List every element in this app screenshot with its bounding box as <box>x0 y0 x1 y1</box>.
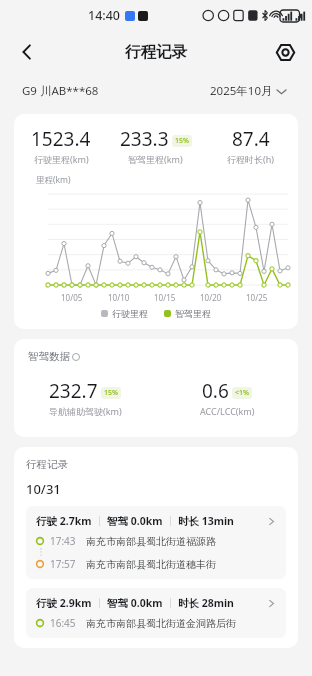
staticText: 行驶 2.7km <box>36 514 92 528</box>
staticText: 南充市南部县蜀北街道福源路 <box>86 535 216 548</box>
button[interactable]: 行驶 2.7km <box>26 506 286 579</box>
staticText: 2025年10月 <box>210 83 273 99</box>
staticText: 南充市南部县蜀北街道穗丰街 <box>86 558 216 571</box>
staticText: 智驾数据 <box>28 350 70 363</box>
staticText: 行程记录 <box>26 458 68 471</box>
staticText: 行程时长(h) <box>227 153 274 165</box>
staticText: 时长 28min <box>178 596 234 610</box>
staticText: 行驶 2.9km <box>36 596 92 610</box>
staticText: 10/31 <box>26 480 61 498</box>
staticText: 时长 13min <box>178 514 234 528</box>
staticText: 10/05 <box>61 292 83 303</box>
staticText: ACC/LCC(km) <box>200 405 255 417</box>
staticText: 14:40 <box>88 7 121 24</box>
staticText: 87.4 <box>232 126 270 152</box>
staticText: <1% <box>235 388 249 398</box>
staticText: 10/15 <box>154 292 176 303</box>
staticText: 行驶里程 <box>112 308 148 319</box>
staticText: 1523.4 <box>31 126 91 152</box>
staticText: 智驾 0.0km <box>107 514 163 528</box>
staticText: 0.6 <box>202 378 229 404</box>
staticText: 17:57 <box>50 557 76 571</box>
staticText: G9 川AB***68 <box>22 83 99 99</box>
button[interactable]: Settings <box>268 35 302 69</box>
button[interactable]: Back <box>10 35 44 69</box>
button[interactable]: 行驶 2.9km <box>26 588 286 638</box>
staticText: 智驾里程 <box>175 308 211 319</box>
staticText: 232.7 <box>49 378 98 404</box>
staticText: 10/10 <box>108 292 130 303</box>
staticText: 10/25 <box>246 292 268 303</box>
button[interactable]: 2025年10月 <box>206 79 290 103</box>
button[interactable]: 智驾数据 <box>28 350 80 363</box>
staticText: 智驾 0.0km <box>107 596 163 610</box>
staticText: 行驶里程(km) <box>34 153 89 165</box>
staticText: 17:43 <box>50 534 76 548</box>
staticText: 10/20 <box>200 292 222 303</box>
staticText: 15% <box>104 388 118 398</box>
staticText: 233.3 <box>120 126 169 152</box>
staticText: 15% <box>175 136 189 146</box>
staticText: 行程记录 <box>125 42 187 62</box>
staticText: 里程(km) <box>36 174 71 186</box>
staticText: 南充市南部县蜀北街道金洞路后街 <box>86 617 236 630</box>
staticText: 16:45 <box>50 616 76 630</box>
staticText: 导航辅助驾驶(km) <box>49 405 122 417</box>
staticText: 智驾里程(km) <box>128 153 183 165</box>
